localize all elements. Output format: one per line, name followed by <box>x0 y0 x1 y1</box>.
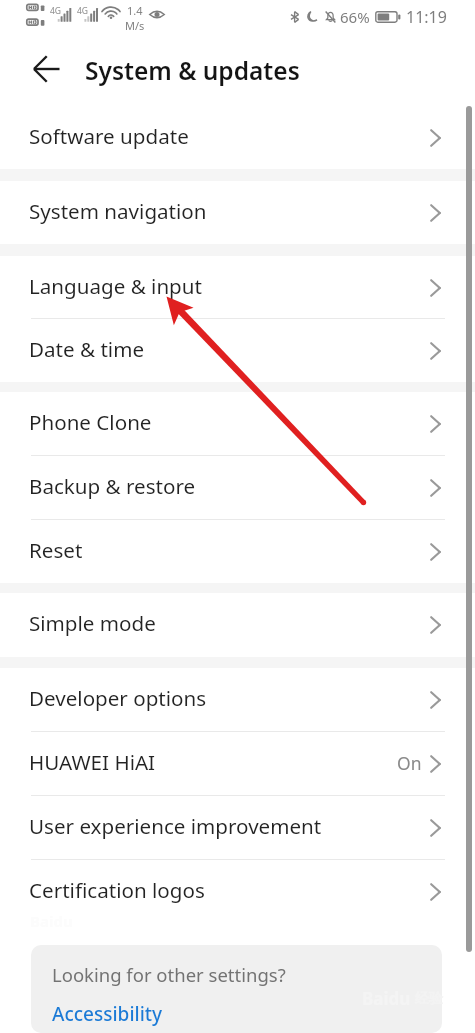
staticText: Language & input <box>29 272 202 300</box>
button[interactable]: Reset <box>0 520 475 583</box>
button[interactable]: HUAWEI HiAI <box>0 732 475 796</box>
staticText: System & updates <box>85 54 300 87</box>
staticText: Developer options <box>29 684 207 712</box>
staticText: 66% <box>340 7 370 27</box>
button[interactable]: Phone Clone <box>0 392 475 456</box>
staticText: M/s <box>125 18 145 33</box>
staticText: System navigation <box>29 197 207 225</box>
staticText: Phone Clone <box>29 408 152 436</box>
button[interactable]: System navigation <box>0 181 475 244</box>
staticText: 4G <box>50 5 62 17</box>
button[interactable]: Looking for other settings? <box>31 945 442 1033</box>
staticText: Simple mode <box>29 609 156 637</box>
staticText: Reset <box>29 536 83 564</box>
staticText: Date & time <box>29 335 145 363</box>
staticText: 11:19 <box>406 6 447 28</box>
staticText: On <box>397 751 422 775</box>
button[interactable]: Software update <box>0 106 475 169</box>
staticText: Backup & restore <box>29 472 196 500</box>
staticText: 1.4 <box>127 3 143 18</box>
button[interactable]: User experience improvement <box>0 796 475 860</box>
button[interactable]: Back <box>23 46 69 92</box>
button[interactable]: Language & input <box>0 256 475 319</box>
staticText: User experience improvement <box>29 812 322 840</box>
staticText: Looking for other settings? <box>52 962 286 987</box>
button[interactable]: Date & time <box>0 319 475 382</box>
staticText: 4G <box>77 5 89 17</box>
staticText: HUAWEI HiAI <box>29 748 156 776</box>
button[interactable]: Developer options <box>0 668 475 732</box>
button[interactable]: Backup & restore <box>0 456 475 520</box>
button[interactable]: Simple mode <box>0 593 475 657</box>
staticText: Accessibility <box>52 1001 163 1027</box>
staticText: Certification logos <box>29 876 205 904</box>
staticText: Software update <box>29 122 189 150</box>
button[interactable]: Certification logos <box>0 860 475 924</box>
